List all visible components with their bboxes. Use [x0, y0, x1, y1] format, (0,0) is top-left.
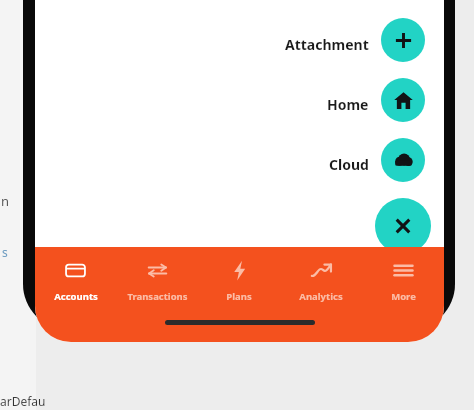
staticText: s	[2, 244, 8, 260]
button[interactable]: Close menu	[375, 198, 431, 254]
button[interactable]: Home	[381, 78, 425, 122]
button[interactable]: More	[362, 247, 444, 309]
button[interactable]: Cloud	[320, 148, 378, 181]
button[interactable]: Transactions	[116, 247, 198, 309]
button[interactable]: Home	[318, 88, 378, 121]
button[interactable]: Analytics	[280, 247, 362, 309]
staticText: Cloud	[329, 155, 369, 174]
staticText: More	[391, 290, 416, 303]
staticText: Accounts	[54, 290, 98, 303]
staticText: Plans	[226, 290, 252, 303]
staticText: arDefau	[0, 393, 46, 409]
staticText: Attachment	[285, 35, 369, 54]
button[interactable]: Attachment	[276, 28, 378, 61]
button[interactable]: Plans	[198, 247, 280, 309]
button[interactable]: Add attachment	[381, 18, 425, 62]
button[interactable]: Cloud	[381, 138, 425, 182]
button[interactable]: Accounts	[35, 247, 116, 309]
staticText: Analytics	[299, 290, 343, 303]
staticText: n	[1, 192, 10, 210]
staticText: Transactions	[127, 290, 188, 303]
staticText: Home	[327, 95, 369, 114]
